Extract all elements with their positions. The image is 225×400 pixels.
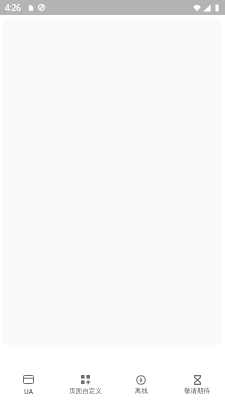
staticText: UA [24, 387, 33, 396]
button[interactable]: 页面自定义 [57, 346, 113, 400]
button[interactable]: UA tabs [0, 346, 57, 400]
staticText: 4:26 [5, 2, 21, 13]
button[interactable]: 离线 [113, 346, 169, 400]
staticText: 离线 [135, 387, 148, 395]
staticText: 页面自定义 [69, 387, 102, 395]
button[interactable]: 敬请期待 [169, 346, 225, 400]
other: UA tabs [23, 374, 34, 385]
staticText: 敬请期待 [184, 387, 210, 395]
other: 敬请期待 [194, 374, 201, 385]
other: 离线 [136, 374, 146, 385]
other: 页面自定义 [81, 374, 90, 385]
